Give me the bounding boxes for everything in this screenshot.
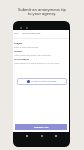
staticText: SUBJECT: [14, 42, 23, 45]
button[interactable]: SUBMIT TIP: [15, 124, 67, 130]
staticText: Back: [14, 32, 19, 35]
staticText: ATTACHMENTS: [14, 58, 30, 61]
staticText: DETAILS: [14, 50, 23, 53]
button[interactable]: Recents: [54, 134, 58, 138]
button[interactable]: Attach a Photo or Video: [17, 78, 67, 85]
staticText: SUBMIT TIP: [34, 126, 49, 129]
staticText: What, where and when did it happen?: [14, 54, 52, 57]
staticText: Submit an anonymous tip to your agency.: [0, 7, 84, 17]
staticText: tips.myagency.gov: [22, 32, 41, 35]
button[interactable]: Back: [14, 32, 70, 35]
button[interactable]: Back: [25, 134, 29, 138]
staticText: Enter a short description: [14, 46, 39, 49]
staticText: Attach a Photo or Video: [31, 80, 57, 83]
button[interactable]: Home: [40, 134, 44, 138]
staticText: Please give us as many details as you ca…: [14, 62, 61, 65]
